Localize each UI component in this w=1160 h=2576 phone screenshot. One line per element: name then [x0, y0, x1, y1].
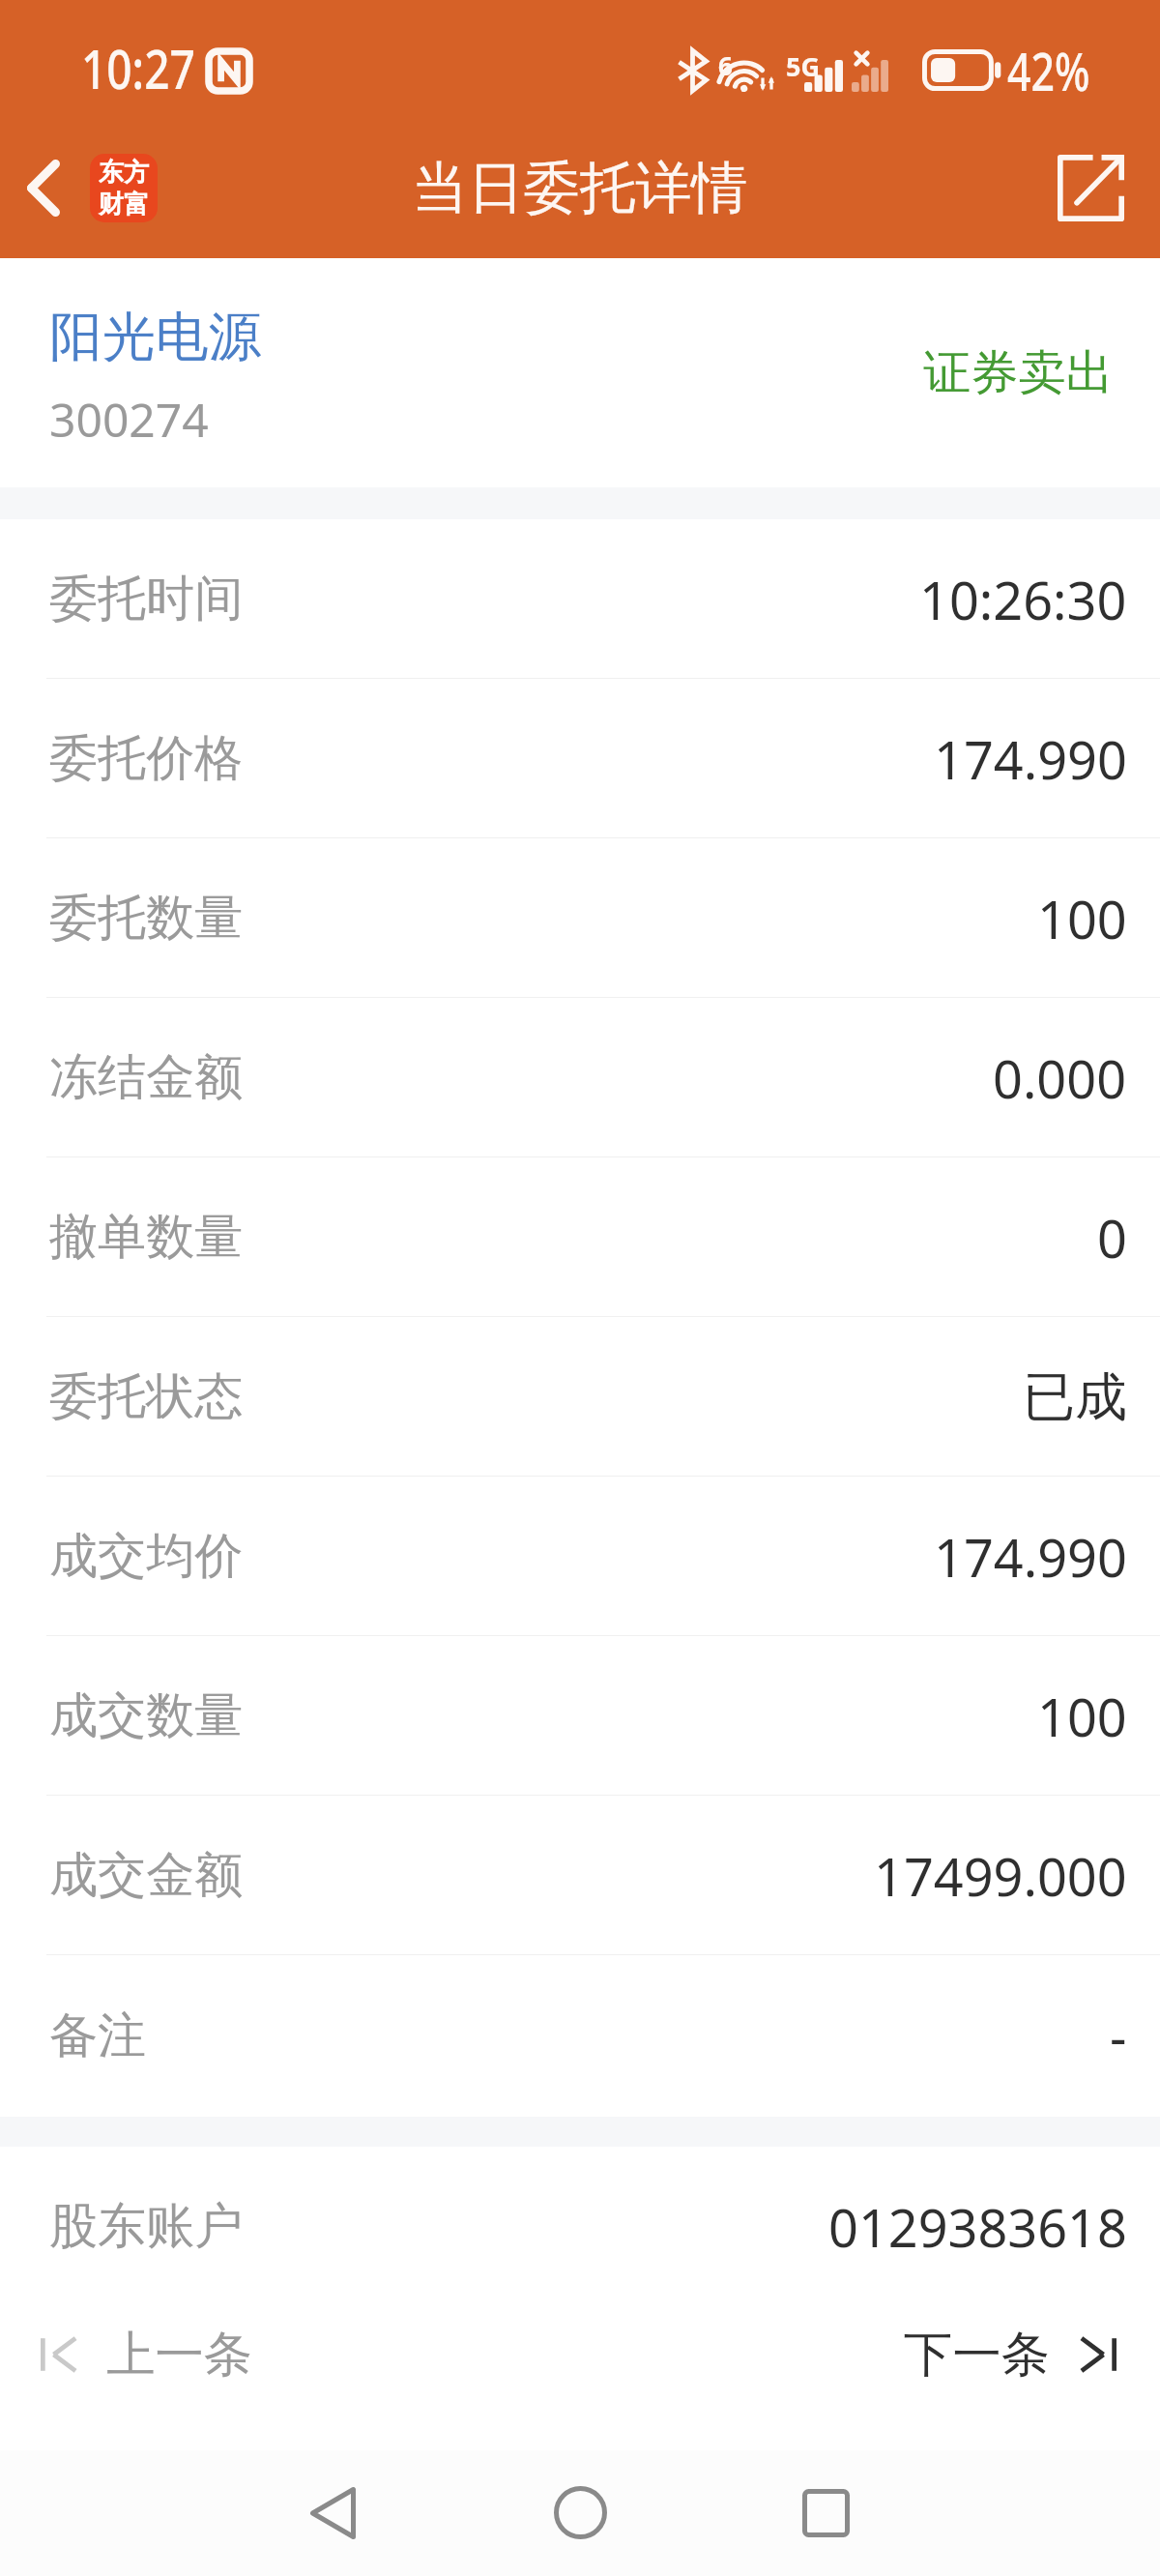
staticText: 证券卖出 — [923, 343, 1114, 403]
staticText: 0.000 — [993, 1042, 1127, 1114]
staticText: 冻结金额 — [49, 1047, 244, 1108]
staticText: 东方 — [99, 157, 150, 189]
staticText: 10:27 — [81, 31, 195, 104]
button[interactable]: 委托状态 — [0, 1317, 1160, 1477]
staticText: 备注 — [49, 2005, 147, 2066]
button[interactable]: Home — [535, 2459, 625, 2566]
other: Bluetooth — [678, 49, 708, 92]
other: Battery 42 percent — [922, 49, 1002, 91]
staticText: 委托数量 — [49, 888, 244, 949]
staticText: 6 — [718, 48, 733, 83]
staticText: 下一条 — [904, 2324, 1051, 2385]
button[interactable]: 下一条 — [863, 2306, 1160, 2402]
staticText: 成交金额 — [49, 1845, 244, 1906]
button[interactable]: 撤单数量 — [0, 1157, 1160, 1317]
staticText: 已成 — [1023, 1364, 1127, 1430]
other: NFC — [209, 51, 249, 91]
staticText: 100 — [1037, 883, 1127, 954]
button[interactable]: Share — [1044, 141, 1137, 234]
staticText: 上一条 — [106, 2324, 253, 2385]
button[interactable]: 委托数量 — [0, 838, 1160, 998]
staticText: 5G — [786, 48, 820, 84]
button[interactable]: 委托时间 — [0, 519, 1160, 679]
button[interactable]: 股东账户 — [0, 2147, 1160, 2306]
button[interactable]: 冻结金额 — [0, 998, 1160, 1157]
staticText: 当日委托详情 — [412, 153, 748, 223]
button[interactable]: 东方财富 — [90, 154, 158, 222]
button[interactable]: 成交金额 — [0, 1796, 1160, 1955]
staticText: 股东账户 — [49, 2196, 244, 2257]
staticText: 174.990 — [934, 723, 1127, 795]
button[interactable]: Recent apps — [780, 2460, 871, 2566]
staticText: 委托时间 — [49, 569, 244, 629]
button[interactable]: 备注 — [0, 1955, 1160, 2117]
staticText: 委托状态 — [49, 1366, 244, 1427]
staticText: 100 — [1037, 1681, 1127, 1752]
staticText: 174.990 — [934, 1521, 1127, 1593]
staticText: 撤单数量 — [49, 1207, 244, 1268]
staticText: 10:26:30 — [919, 564, 1127, 635]
button[interactable]: 成交数量 — [0, 1636, 1160, 1796]
staticText: 17499.000 — [874, 1840, 1127, 1912]
staticText: 阳光电源 — [49, 304, 262, 370]
staticText: 成交均价 — [49, 1526, 244, 1587]
staticText: 财富 — [99, 189, 150, 220]
staticText: 0129383618 — [828, 2191, 1127, 2263]
staticText: 42% — [1007, 34, 1090, 106]
button[interactable]: Back — [287, 2460, 378, 2566]
staticText: 成交数量 — [49, 1685, 244, 1746]
staticText: - — [1110, 2001, 1127, 2072]
button[interactable]: 上一条 — [0, 2306, 294, 2402]
staticText: 委托价格 — [49, 728, 244, 789]
button[interactable]: 委托价格 — [0, 679, 1160, 838]
button[interactable]: Back — [6, 141, 81, 234]
button[interactable]: 成交均价 — [0, 1477, 1160, 1636]
staticText: 300274 — [49, 388, 209, 451]
staticText: 0 — [1097, 1202, 1127, 1273]
